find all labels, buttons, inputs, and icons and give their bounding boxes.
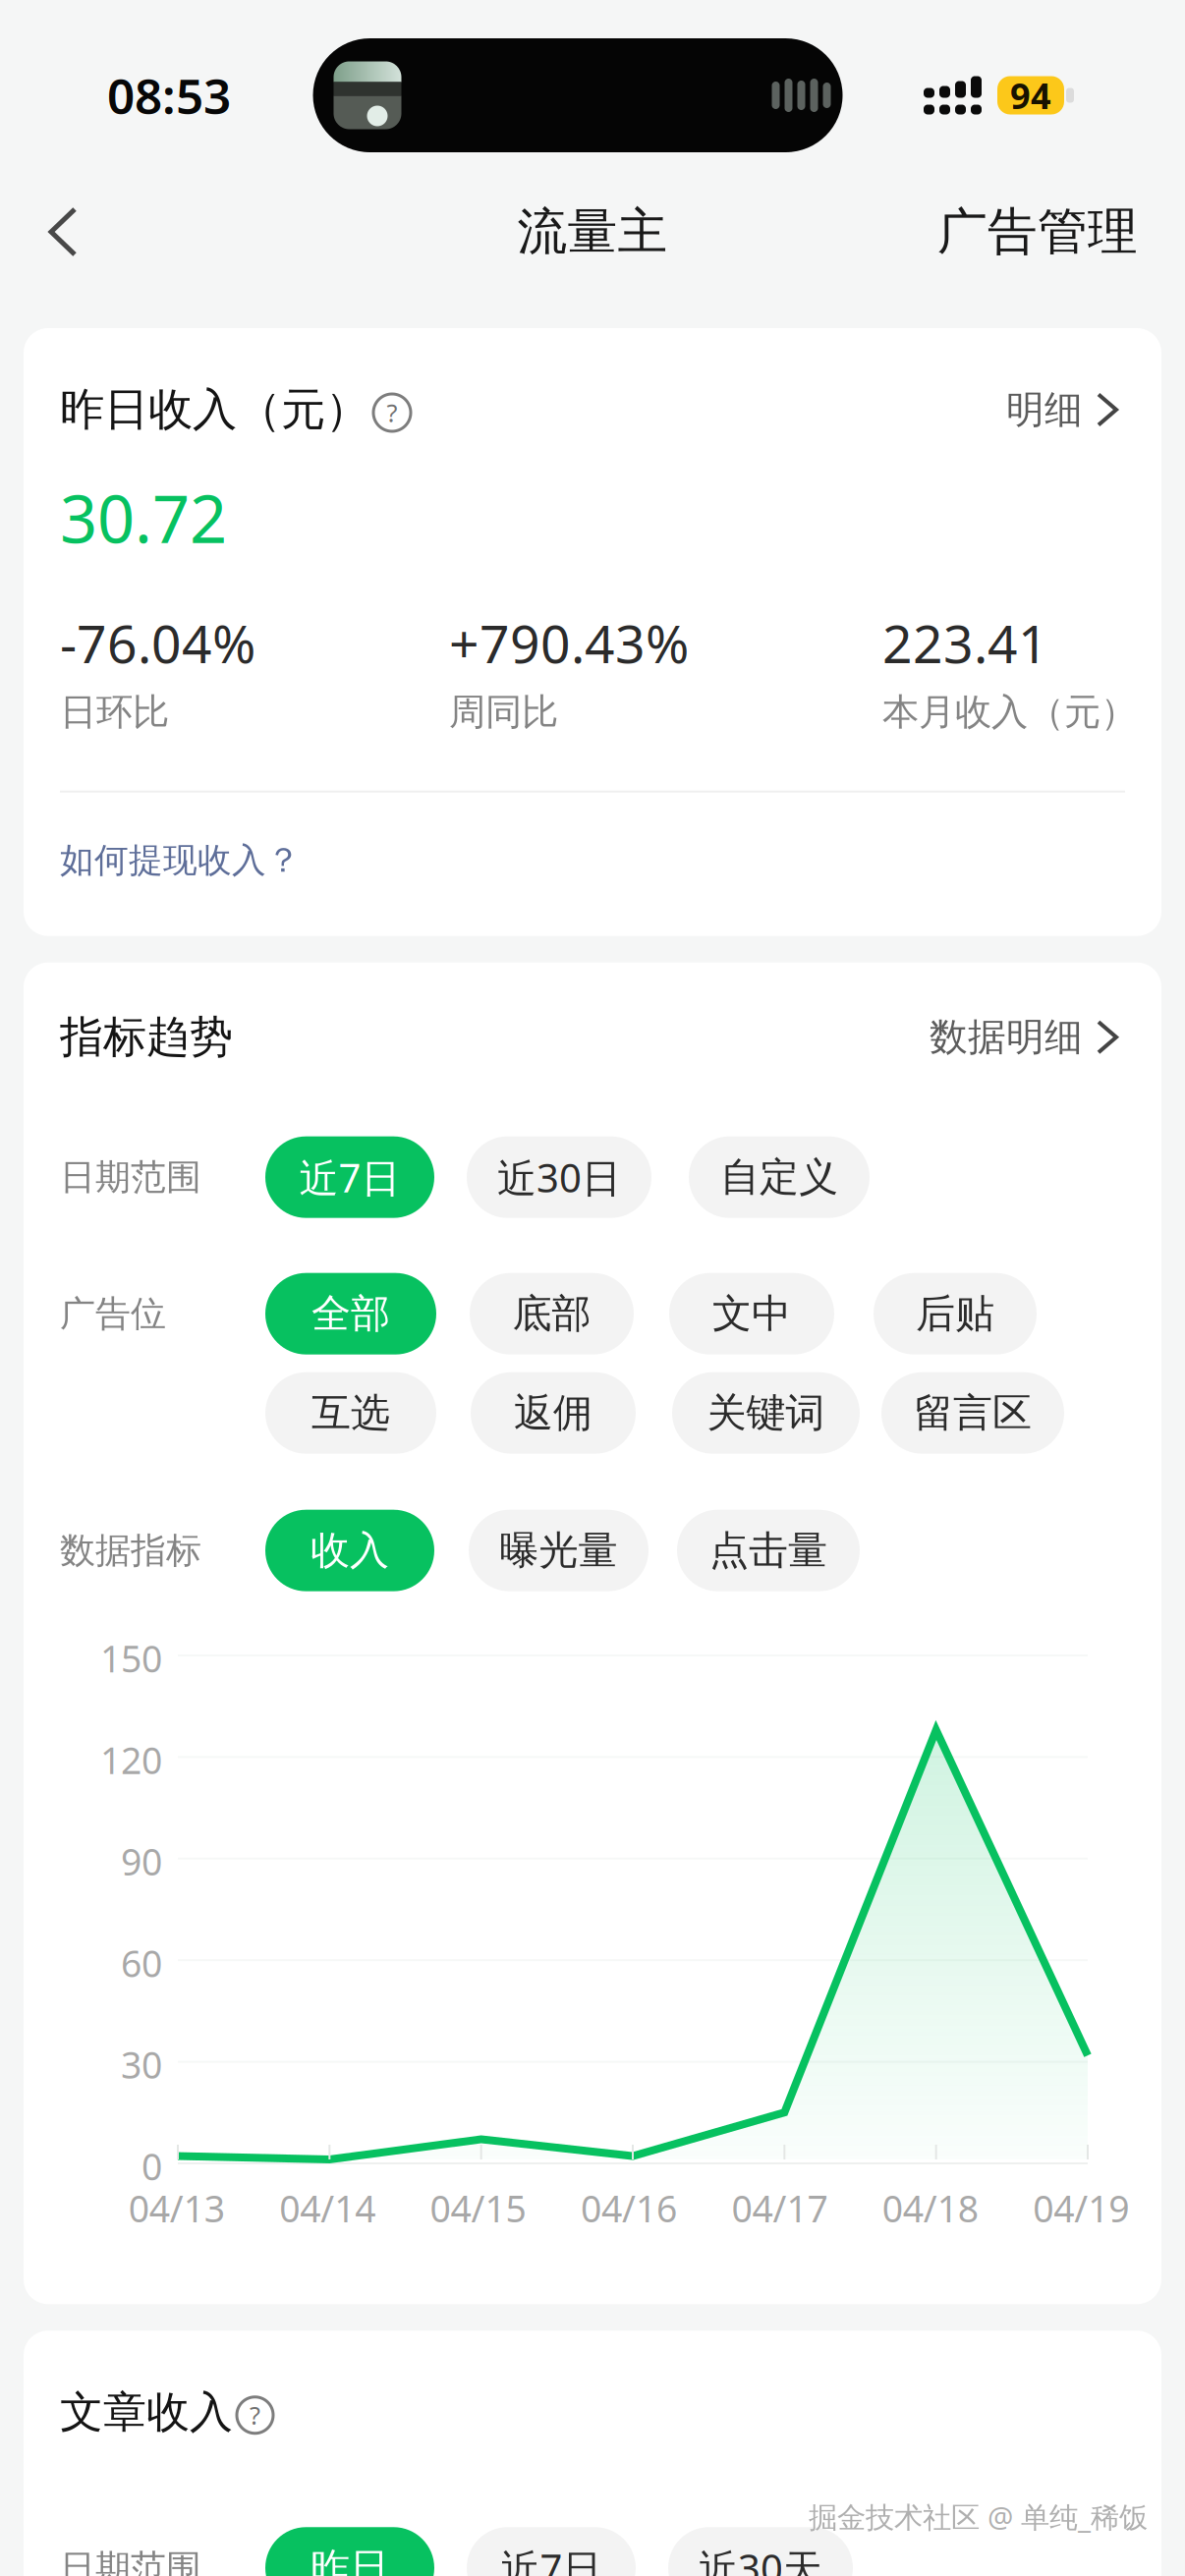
- staticText: 日环比: [60, 689, 169, 735]
- button[interactable]: Back: [0, 177, 110, 287]
- staticText: 04/14: [279, 2184, 375, 2232]
- staticText: 明细: [1006, 386, 1083, 433]
- staticText: 223.41: [882, 608, 1048, 678]
- staticText: 08:53: [107, 63, 231, 127]
- staticText: 收入: [310, 1526, 389, 1575]
- staticText: 全部: [311, 1290, 390, 1338]
- staticText: 流量主: [517, 201, 668, 262]
- staticText: 返佣: [514, 1389, 592, 1437]
- button[interactable]: 数据明细: [930, 1014, 1125, 1060]
- staticText: 04/15: [430, 2184, 526, 2232]
- staticText: 30.72: [60, 474, 227, 561]
- button[interactable]: 返佣: [471, 1372, 636, 1454]
- staticText: 底部: [512, 1290, 591, 1338]
- staticText: 留言区: [914, 1389, 1032, 1437]
- staticText: 文章收入: [60, 2386, 233, 2439]
- staticText: 掘金技术社区 @ 单纯_稀饭: [809, 2497, 1148, 2536]
- staticText: 指标趋势: [60, 1011, 233, 1064]
- staticText: 04/17: [731, 2184, 828, 2232]
- staticText: ?: [387, 396, 397, 429]
- staticText: 近30日: [497, 1151, 621, 1203]
- button[interactable]: 文中: [669, 1273, 834, 1355]
- button[interactable]: 互选: [265, 1372, 436, 1454]
- staticText: 广告位: [60, 1292, 166, 1335]
- staticText: 昨日收入（元）: [60, 382, 369, 437]
- button[interactable]: 收入: [265, 1510, 434, 1591]
- button[interactable]: 曝光量: [469, 1510, 649, 1591]
- staticText: 近30天: [699, 2542, 822, 2576]
- staticText: 04/13: [128, 2184, 225, 2232]
- staticText: 90: [121, 1837, 162, 1886]
- staticText: 互选: [311, 1389, 390, 1437]
- button[interactable]: 近7日: [265, 1136, 434, 1218]
- staticText: 近7日: [501, 2542, 602, 2576]
- button[interactable]: 明细: [1006, 386, 1125, 433]
- button[interactable]: 留言区: [881, 1372, 1064, 1454]
- staticText: 数据明细: [930, 1014, 1083, 1060]
- staticText: 04/16: [581, 2184, 677, 2232]
- staticText: 60: [121, 1939, 162, 1987]
- staticText: 数据指标: [60, 1529, 201, 1572]
- staticText: 关键词: [707, 1389, 825, 1437]
- button[interactable]: 如何提现收入？: [60, 793, 301, 936]
- staticText: 日期范围: [60, 1155, 201, 1199]
- staticText: 昨日: [310, 2544, 389, 2576]
- button[interactable]: 近7日: [467, 2527, 636, 2576]
- staticText: 本月收入（元）: [882, 689, 1137, 735]
- staticText: 04/19: [1033, 2184, 1129, 2232]
- button[interactable]: 关键词: [672, 1372, 860, 1454]
- staticText: 点击量: [709, 1526, 827, 1575]
- button[interactable]: 近30天: [668, 2527, 853, 2576]
- staticText: 日期范围: [60, 2546, 201, 2576]
- staticText: 04/18: [882, 2184, 979, 2232]
- staticText: +790.43%: [449, 608, 689, 678]
- staticText: 近7日: [299, 1151, 400, 1203]
- button[interactable]: 全部: [265, 1273, 436, 1355]
- button[interactable]: 近30日: [467, 1136, 651, 1218]
- staticText: 文中: [712, 1290, 791, 1338]
- button[interactable]: 昨日: [265, 2527, 434, 2576]
- staticText: 0: [141, 2142, 162, 2190]
- staticText: 94: [1010, 72, 1051, 119]
- staticText: 后贴: [916, 1290, 994, 1338]
- staticText: 150: [100, 1634, 162, 1683]
- staticText: 自定义: [720, 1153, 838, 1201]
- button[interactable]: 自定义: [689, 1136, 870, 1218]
- button[interactable]: 后贴: [874, 1273, 1037, 1355]
- staticText: 120: [100, 1735, 162, 1784]
- staticText: -76.04%: [60, 608, 255, 678]
- staticText: 广告管理: [937, 201, 1138, 262]
- button[interactable]: 点击量: [677, 1510, 860, 1591]
- staticText: 周同比: [449, 689, 558, 735]
- staticText: ?: [250, 2399, 260, 2432]
- button[interactable]: 底部: [470, 1273, 634, 1355]
- staticText: 如何提现收入？: [60, 839, 301, 881]
- staticText: 30: [121, 2040, 162, 2089]
- button[interactable]: 广告管理: [937, 177, 1185, 287]
- staticText: 曝光量: [500, 1526, 618, 1575]
